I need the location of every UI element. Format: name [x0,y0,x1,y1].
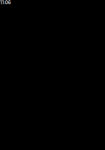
staticText: 11:06 [0,0,11,5]
